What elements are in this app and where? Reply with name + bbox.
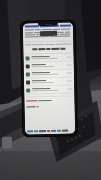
- button[interactable]: Item icon: [24, 77, 74, 85]
- button[interactable]: [25, 24, 71, 27]
- button[interactable]: Item icon: [23, 53, 74, 61]
- button[interactable]: Item icon: [24, 69, 74, 77]
- other: Item icon: [26, 88, 30, 92]
- button[interactable]: [25, 47, 71, 50]
- other: Item icon: [26, 64, 30, 68]
- other: Item icon: [26, 72, 30, 76]
- other: Item icon: [26, 80, 30, 84]
- button[interactable]: Item icon: [24, 85, 74, 93]
- button[interactable]: Item icon: [24, 61, 74, 69]
- other: Item icon: [25, 56, 30, 60]
